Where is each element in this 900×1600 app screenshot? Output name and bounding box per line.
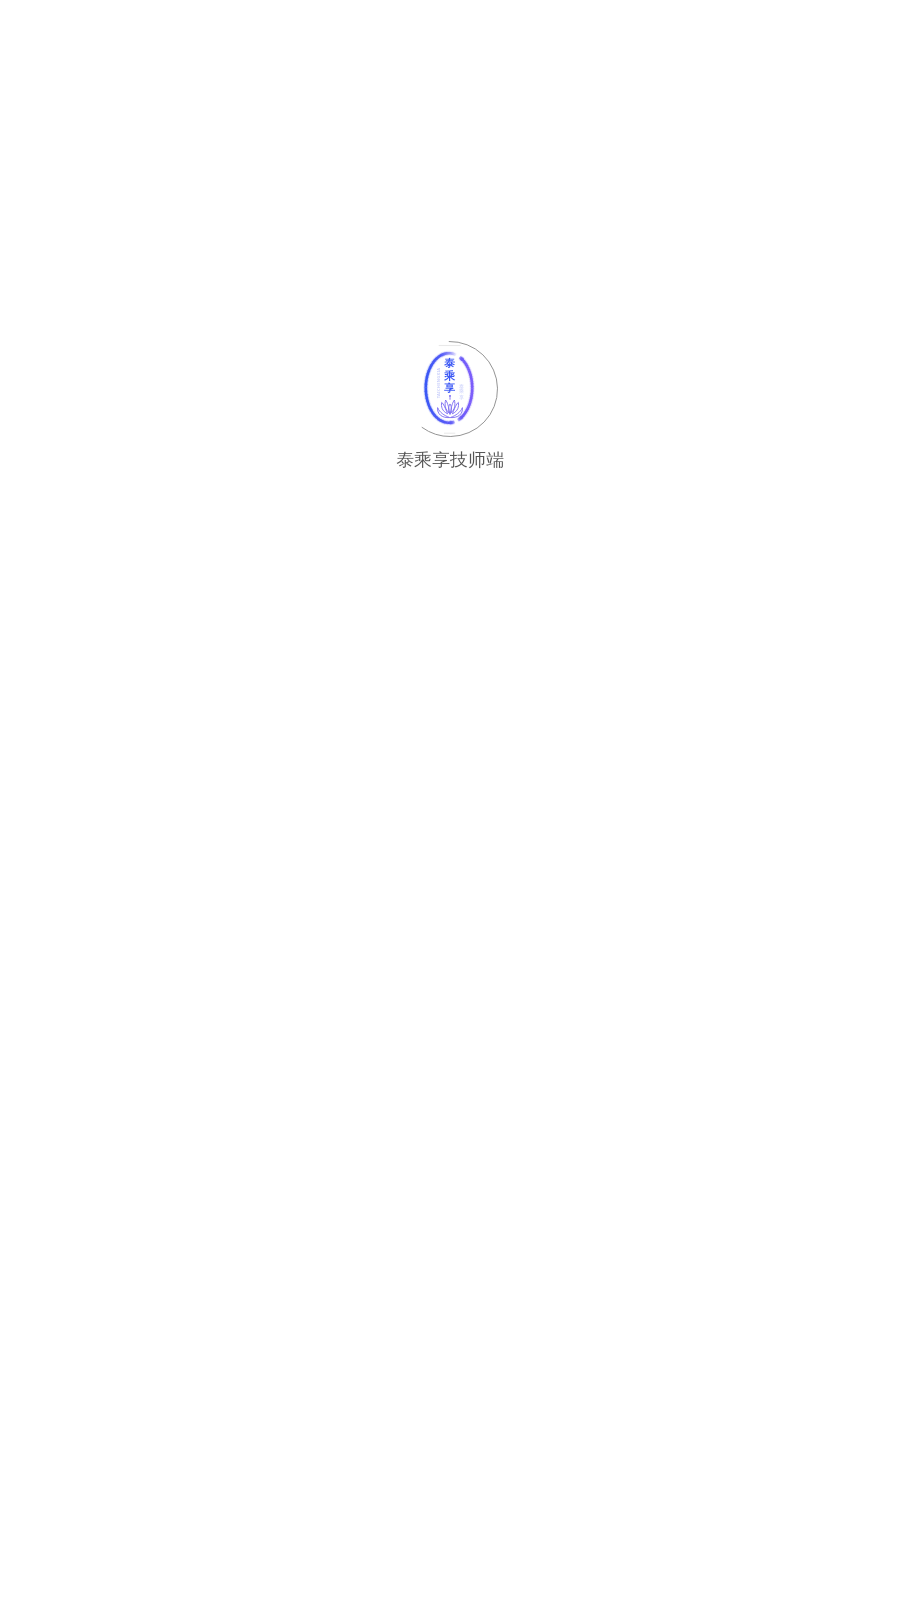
button[interactable]: 泰乘享技师端	[396, 449, 504, 472]
staticText: 享	[444, 381, 455, 395]
staticText: 乘	[444, 369, 455, 383]
staticText: 泰	[444, 356, 455, 370]
staticText: TAICHENGXIANG	[436, 367, 442, 399]
staticText: 享	[459, 394, 464, 400]
staticText: 乘	[459, 388, 464, 394]
button[interactable]: 泰乘享技师端 logo	[399, 338, 502, 441]
staticText: 泰	[459, 383, 464, 389]
